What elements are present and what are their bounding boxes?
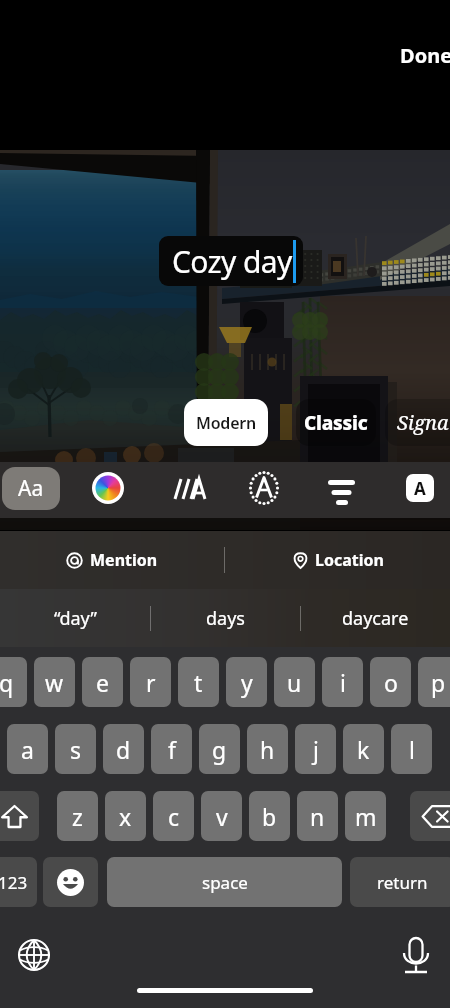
button[interactable]: y <box>226 657 267 707</box>
staticText: j <box>313 734 319 765</box>
button[interactable]: n <box>297 791 338 841</box>
button[interactable]: space <box>107 857 342 907</box>
button[interactable]: Numbers <box>0 857 37 907</box>
staticText: i <box>340 667 346 698</box>
staticText: b <box>262 801 277 832</box>
staticText: t <box>194 667 203 698</box>
button[interactable]: a <box>7 724 48 774</box>
button[interactable]: g <box>199 724 240 774</box>
staticText: x <box>119 801 132 832</box>
staticText: a <box>21 734 34 765</box>
button[interactable]: v <box>201 791 242 841</box>
staticText: m <box>355 801 377 832</box>
staticText: z <box>72 801 83 832</box>
button[interactable]: Text effects <box>247 471 281 505</box>
button[interactable]: q <box>0 657 27 707</box>
staticText: r <box>146 667 156 698</box>
button[interactable]: b <box>249 791 290 841</box>
button[interactable]: daycare <box>301 589 450 647</box>
button[interactable]: t <box>178 657 219 707</box>
staticText: Cozy day <box>172 241 292 282</box>
staticText: h <box>260 734 275 765</box>
staticText: k <box>357 734 370 765</box>
button[interactable]: x <box>105 791 146 841</box>
button[interactable]: f <box>151 724 192 774</box>
staticText: y <box>241 667 253 698</box>
staticText: u <box>287 667 302 698</box>
staticText: o <box>384 667 398 698</box>
button[interactable]: Done <box>392 38 450 73</box>
staticText: Done <box>400 42 450 69</box>
button[interactable]: p <box>418 657 450 707</box>
button[interactable]: d <box>103 724 144 774</box>
staticText: e <box>96 667 109 698</box>
button[interactable]: h <box>247 724 288 774</box>
staticText: daycare <box>342 606 409 631</box>
staticText: l <box>409 734 415 765</box>
button[interactable]: k <box>343 724 384 774</box>
staticText: 123 <box>0 871 28 894</box>
button[interactable]: r <box>130 657 171 707</box>
button[interactable]: Shift <box>0 791 39 841</box>
button[interactable]: Change keyboard <box>17 938 51 972</box>
staticText: w <box>45 667 64 698</box>
staticText: g <box>212 734 227 765</box>
button[interactable]: u <box>274 657 315 707</box>
button[interactable]: Signature <box>385 399 450 446</box>
staticText: Modern <box>196 412 257 434</box>
button[interactable]: Modern <box>184 399 268 446</box>
staticText: d <box>116 734 131 765</box>
staticText: Classic <box>304 410 368 436</box>
button[interactable]: Backspace <box>410 791 450 841</box>
button[interactable]: Text background <box>406 474 434 502</box>
button[interactable]: m <box>345 791 386 841</box>
button[interactable]: Dictation <box>400 936 432 976</box>
button[interactable]: Emoji <box>43 857 98 907</box>
staticText: c <box>168 801 180 832</box>
staticText: days <box>206 606 245 631</box>
button[interactable]: Location <box>225 531 450 589</box>
button[interactable]: Text colour <box>92 472 124 504</box>
button[interactable]: l <box>391 724 432 774</box>
staticText: A <box>414 477 426 500</box>
staticText: f <box>168 734 176 765</box>
button[interactable]: s <box>55 724 96 774</box>
button[interactable]: o <box>370 657 411 707</box>
staticText: n <box>310 801 325 832</box>
button[interactable]: e <box>82 657 123 707</box>
staticText: s <box>70 734 82 765</box>
button[interactable]: c <box>153 791 194 841</box>
staticText: p <box>431 667 446 698</box>
button[interactable]: return <box>350 857 450 907</box>
button[interactable]: Classic <box>296 399 376 446</box>
button[interactable]: “day” <box>0 589 150 647</box>
button[interactable]: z <box>57 791 98 841</box>
button[interactable]: i <box>322 657 363 707</box>
staticText: “day” <box>54 606 97 631</box>
button[interactable]: w <box>34 657 75 707</box>
staticText: Aa <box>18 474 44 503</box>
staticText: Location <box>315 549 384 571</box>
staticText: space <box>202 871 248 894</box>
button[interactable]: Text alignment <box>325 472 359 506</box>
button[interactable]: Cozy day <box>159 236 303 286</box>
staticText: v <box>216 801 228 832</box>
staticText: q <box>0 667 14 698</box>
button[interactable]: Aa <box>2 467 60 510</box>
staticText: Mention <box>90 549 158 571</box>
button[interactable]: Mention <box>0 531 224 589</box>
staticText: Signature <box>397 409 450 436</box>
button[interactable]: Animate text <box>170 472 204 506</box>
button[interactable]: j <box>295 724 336 774</box>
button[interactable]: days <box>151 589 300 647</box>
staticText: return <box>377 871 428 894</box>
